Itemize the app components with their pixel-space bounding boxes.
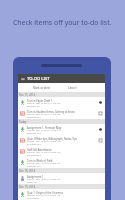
button[interactable]: Toggle task done: [96, 98, 105, 107]
button[interactable]: Quiz 1: Origin of the Universe: [18, 189, 105, 200]
staticText: Dec 15, 2014: [19, 93, 36, 97]
button[interactable]: Cancel: [68, 86, 77, 90]
staticText: Economics 2: [27, 115, 41, 118]
staticText: TO-DO LIST: [27, 76, 50, 82]
staticText: Due at: Dec 19 2014 10:00 AM: [27, 193, 61, 196]
staticText: Quiz: Offsite tips, Bibliograph, Ratios …: [27, 137, 78, 141]
button[interactable]: Turn in Paper Draft 1: [18, 97, 105, 108]
staticText: Mark as done: [33, 86, 51, 90]
staticText: Cancel: [68, 86, 77, 90]
staticText: Geology 101: [27, 164, 42, 167]
staticText: Check items off your to-do list.: [13, 18, 112, 27]
staticText: Economics 2: [27, 153, 41, 156]
button[interactable]: Turn in Week of Field: [18, 157, 105, 168]
staticText: Turn in Week of Field: [27, 159, 53, 163]
button[interactable]: Menu: [18, 74, 105, 83]
staticText: Half Self Attendance: [27, 148, 52, 152]
staticText: Due at: Dec 15 2014 11:55 PM: [27, 101, 61, 104]
staticText: Turn in Paper Draft 1: [27, 99, 53, 103]
button[interactable]: Toggle task done: [96, 109, 105, 118]
staticText: Dec 18, 2014: [19, 169, 36, 173]
staticText: Due at: Dec 16 2014 10:00 AM: [27, 128, 61, 131]
staticText: Dec 19, 2014: [19, 185, 36, 189]
staticText: Biology 101: [27, 104, 41, 107]
staticText: Due at: Dec 15 2014 11:55 PM: [27, 112, 61, 115]
staticText: Quiz 1: Origin of the Universe: [27, 191, 63, 195]
button[interactable]: Toggle task done: [96, 125, 105, 134]
staticText: Today: [19, 120, 27, 124]
staticText: Geology 101: [27, 131, 42, 134]
staticText: Assignment 1: Forecast Map: [27, 126, 62, 130]
staticText: Assignment 1: [27, 175, 44, 179]
staticText: Math 101: [27, 180, 38, 183]
button[interactable]: Toggle task done: [96, 136, 105, 145]
staticText: Turn in Student Intros: Getting to know: [27, 110, 75, 114]
other: Menu: [21, 77, 25, 81]
staticText: Economics 2: [27, 142, 41, 145]
staticText: Astronomy: [27, 196, 40, 199]
button[interactable]: Quiz: Offsite tips, Bibliograph, Ratios …: [18, 135, 105, 146]
staticText: Due at: Dec 16 2014 10:00 AM: [27, 150, 61, 153]
button[interactable]: Turn in Student Intros: Getting to know: [18, 108, 105, 119]
button[interactable]: Mark as done: [33, 86, 51, 90]
staticText: Due at: Dec 18 2014 10:00 AM: [27, 177, 61, 180]
button[interactable]: Half Self Attendance: [18, 146, 105, 157]
button[interactable]: Assignment 1: Forecast Map: [18, 124, 105, 135]
button[interactable]: Assignment 1: [18, 173, 105, 184]
staticText: Due at: Dec 16 2014 10:00 AM: [27, 139, 61, 142]
staticText: Due at: Dec 16 2014 10:00 AM: [27, 161, 61, 164]
